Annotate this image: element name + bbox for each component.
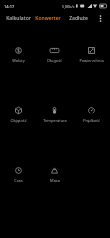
button[interactable]: Konwerter <box>33 12 63 24</box>
staticText: 14:17 <box>4 4 15 9</box>
button[interactable]: Prędkość <box>73 99 110 159</box>
staticText: Temperatura <box>43 118 67 123</box>
staticText: Masa <box>50 178 60 183</box>
staticText: Konwerter <box>35 15 61 22</box>
button[interactable]: Objętość <box>0 99 36 159</box>
staticText: Waluty <box>12 58 25 63</box>
staticText: Prędkość <box>83 118 100 123</box>
button[interactable]: Waluty <box>0 39 36 99</box>
staticText: Czas <box>14 178 23 183</box>
staticText: Zadłuże <box>69 15 88 22</box>
button[interactable]: Masa <box>36 159 73 219</box>
button[interactable]: Długość <box>36 39 73 99</box>
staticText: Kalkulator <box>6 15 31 22</box>
staticText: Powierzchnia <box>79 58 104 63</box>
button[interactable]: More options <box>93 12 107 24</box>
button[interactable]: Powierzchnia <box>73 39 110 99</box>
button[interactable]: Kalkulator <box>3 12 33 24</box>
button[interactable]: Temperatura <box>36 99 73 159</box>
staticText: 5,8Kb/s <box>62 4 75 9</box>
button[interactable]: Czas <box>0 159 36 219</box>
button[interactable]: Zadłuże <box>63 12 93 24</box>
staticText: Długość <box>47 58 62 63</box>
staticText: Objętość <box>10 118 27 123</box>
